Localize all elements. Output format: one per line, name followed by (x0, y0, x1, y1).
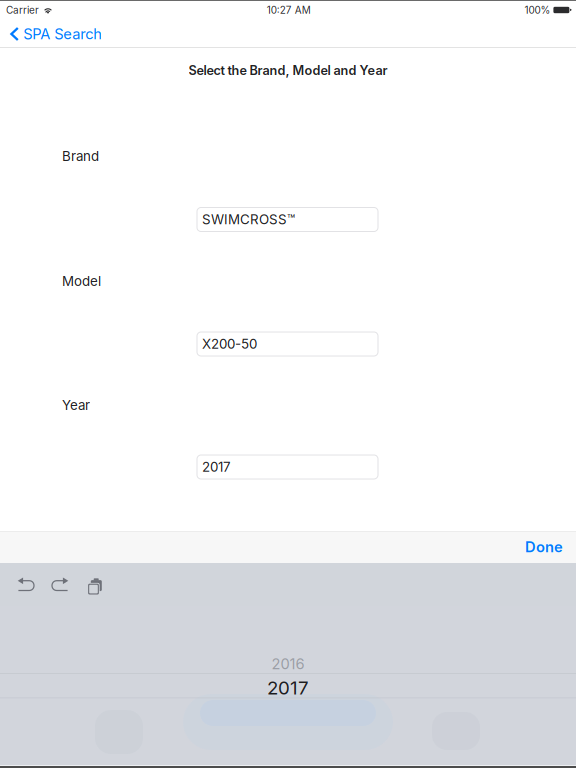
staticText: Model (62, 273, 101, 289)
button[interactable]: 2017 (197, 455, 378, 479)
staticText: 2017 (202, 459, 231, 475)
staticText: 10:27 AM (267, 4, 311, 16)
staticText: X200-50 (202, 336, 257, 352)
button[interactable]: X200-50 (197, 332, 378, 356)
button[interactable]: Paste (77, 567, 111, 601)
button[interactable]: Done (512, 531, 576, 563)
button[interactable]: Redo (43, 567, 77, 601)
staticText: 2017 (267, 676, 309, 699)
staticText: 100% (524, 4, 550, 16)
staticText: Year (62, 397, 90, 413)
button[interactable]: Undo (9, 567, 43, 601)
staticText: Carrier (6, 4, 39, 16)
staticText: Select the Brand, Model and Year (188, 63, 387, 78)
staticText: SPA Search (23, 25, 102, 43)
button[interactable]: SWIMCROSS™ (197, 207, 378, 231)
staticText: SWIMCROSS™ (202, 211, 295, 227)
staticText: Brand (62, 148, 99, 164)
button[interactable]: SPA Search (0, 20, 112, 48)
staticText: Done (525, 538, 563, 556)
staticText: 2016 (271, 655, 304, 673)
